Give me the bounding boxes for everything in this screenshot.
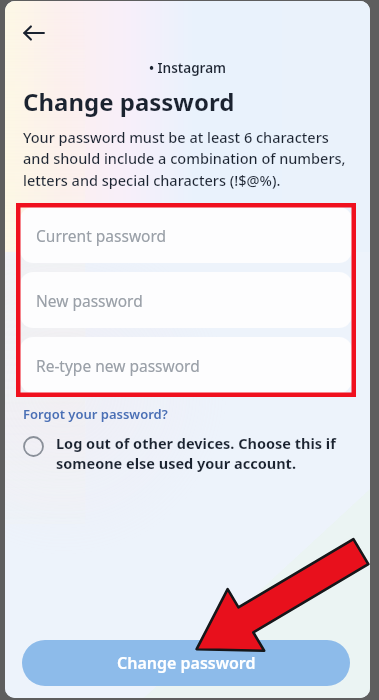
staticText: • Instagram	[5, 59, 370, 77]
staticText: New password	[36, 290, 143, 311]
button[interactable]: New password	[20, 272, 352, 328]
button[interactable]: Log out of other devices. Choose this if…	[23, 433, 350, 474]
button[interactable]: Current password	[20, 207, 352, 263]
button[interactable]: Back	[14, 13, 54, 53]
staticText: Current password	[36, 225, 167, 246]
staticText: Change password	[117, 652, 256, 674]
button[interactable]: Re-type new password	[20, 337, 352, 393]
button[interactable]: Change password	[22, 640, 350, 686]
button[interactable]: Forgot your password?	[23, 405, 168, 423]
staticText: Forgot your password?	[23, 405, 168, 423]
staticText: Log out of other devices. Choose this if…	[56, 433, 350, 474]
staticText: Change password	[23, 85, 235, 118]
staticText: Re-type new password	[36, 355, 200, 376]
staticText: Your password must be at least 6 charact…	[23, 127, 358, 191]
